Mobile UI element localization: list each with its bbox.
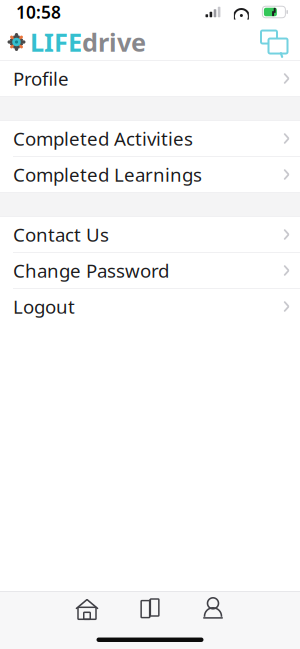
- staticText: Profile: [13, 66, 69, 91]
- button[interactable]: Change Password: [0, 253, 300, 288]
- button[interactable]: Completed Learnings: [0, 157, 300, 192]
- staticText: drive: [82, 25, 146, 59]
- staticText: Change Password: [13, 258, 169, 283]
- button[interactable]: Map: [124, 593, 176, 623]
- button[interactable]: Profile: [187, 593, 239, 623]
- staticText: Completed Learnings: [13, 162, 202, 187]
- staticText: LIFE: [30, 25, 82, 59]
- staticText: Logout: [13, 294, 75, 319]
- staticText: 10:58: [16, 0, 61, 23]
- button[interactable]: Completed Activities: [0, 121, 300, 156]
- button[interactable]: Messages: [254, 25, 294, 59]
- staticText: Completed Activities: [13, 126, 193, 151]
- button[interactable]: Contact Us: [0, 217, 300, 252]
- staticText: Contact Us: [13, 222, 109, 247]
- button[interactable]: Logout: [0, 289, 300, 324]
- button[interactable]: Profile: [0, 61, 300, 96]
- button[interactable]: Home: [61, 593, 113, 623]
